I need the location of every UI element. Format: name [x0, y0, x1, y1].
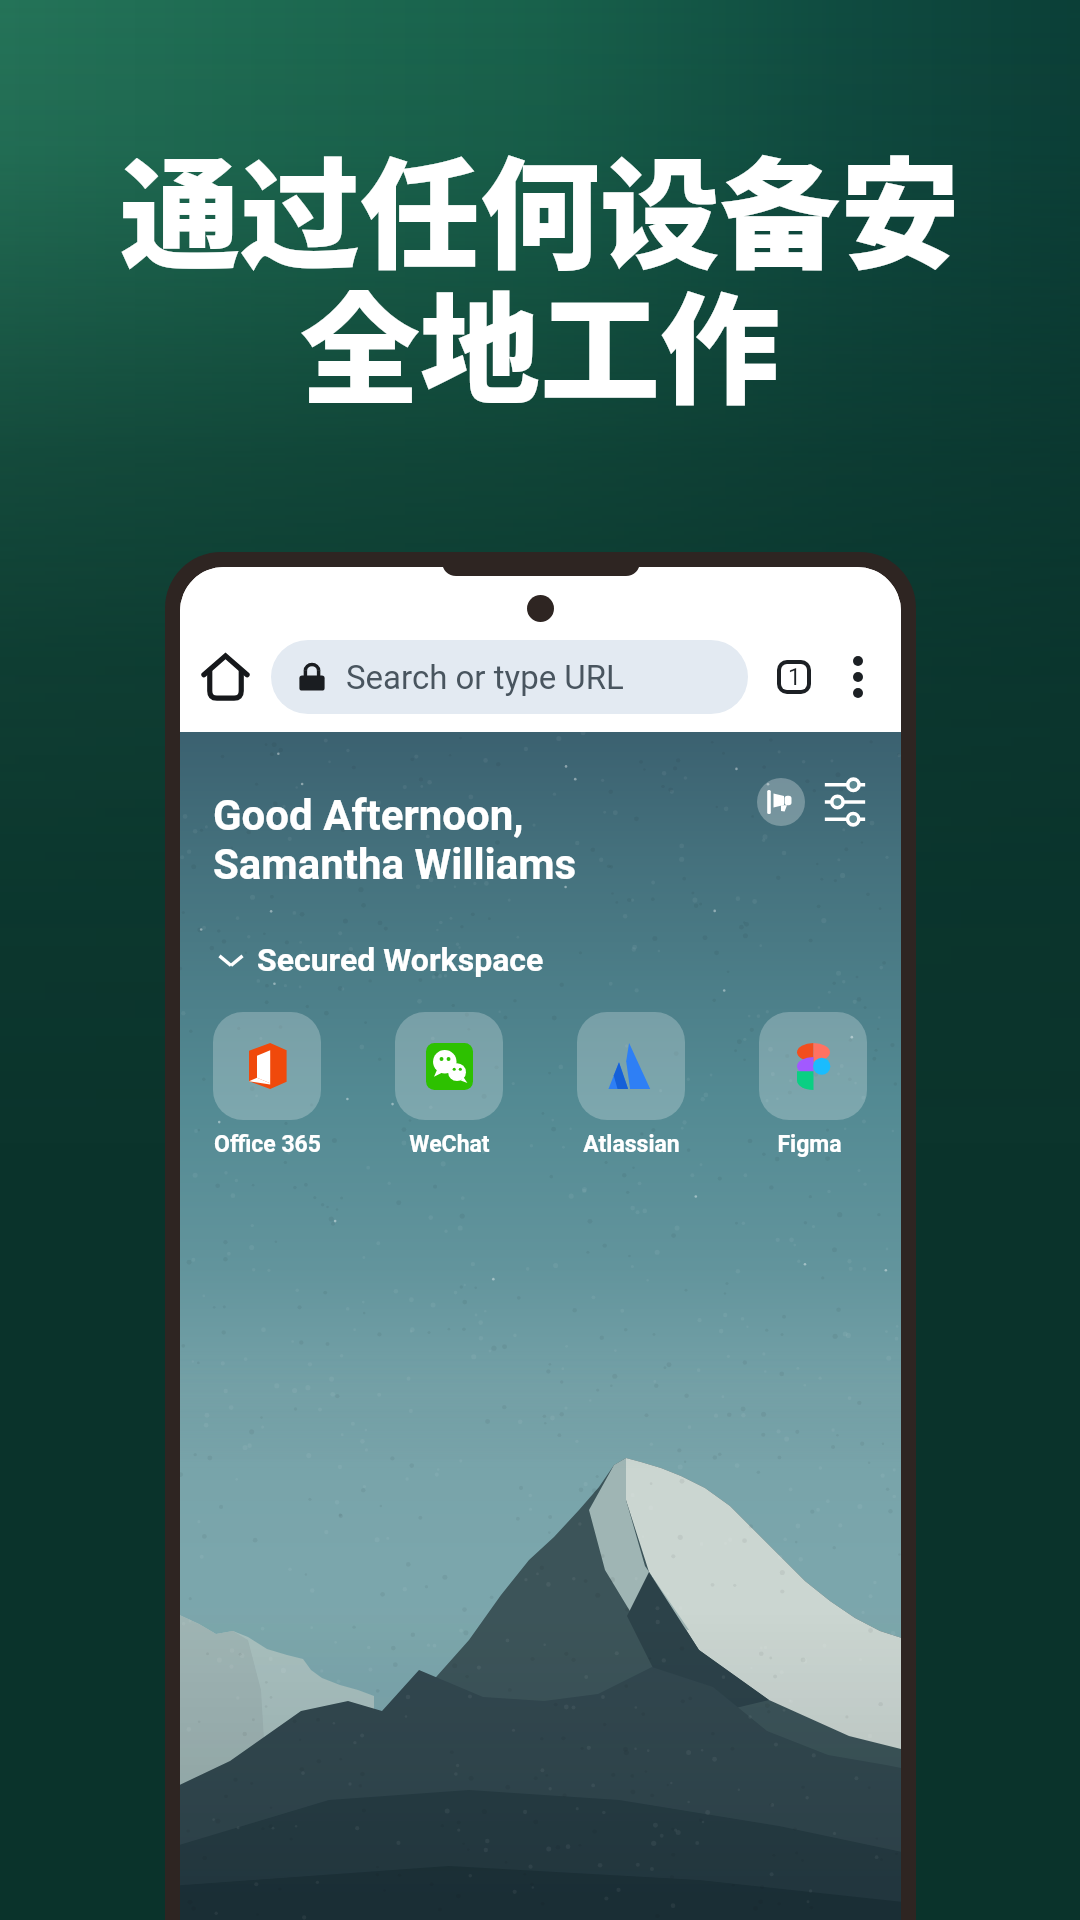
button[interactable]: Announcements: [757, 778, 805, 826]
button[interactable]: Secured Workspace: [211, 940, 544, 980]
staticText: Samantha Williams: [213, 840, 577, 889]
button[interactable]: [577, 1012, 685, 1120]
staticText: Search or type URL: [346, 658, 624, 697]
staticText: Good Afternoon,: [213, 791, 524, 840]
staticText: Figma: [777, 1131, 842, 1158]
button[interactable]: Search or type URL: [271, 640, 748, 714]
button[interactable]: [213, 1012, 321, 1120]
staticText: 1: [788, 664, 801, 690]
staticText: Atlassian: [583, 1131, 680, 1158]
button[interactable]: Home: [194, 646, 256, 708]
button[interactable]: More options: [830, 649, 886, 705]
button[interactable]: Tabs: [766, 649, 822, 705]
staticText: Office 365: [214, 1131, 321, 1158]
button[interactable]: Settings: [821, 778, 869, 826]
staticText: WeChat: [409, 1131, 490, 1158]
button[interactable]: [395, 1012, 503, 1120]
staticText: 通过任何设备安 全地工作: [0, 151, 1080, 421]
button[interactable]: [759, 1012, 867, 1120]
staticText: Secured Workspace: [257, 941, 544, 979]
